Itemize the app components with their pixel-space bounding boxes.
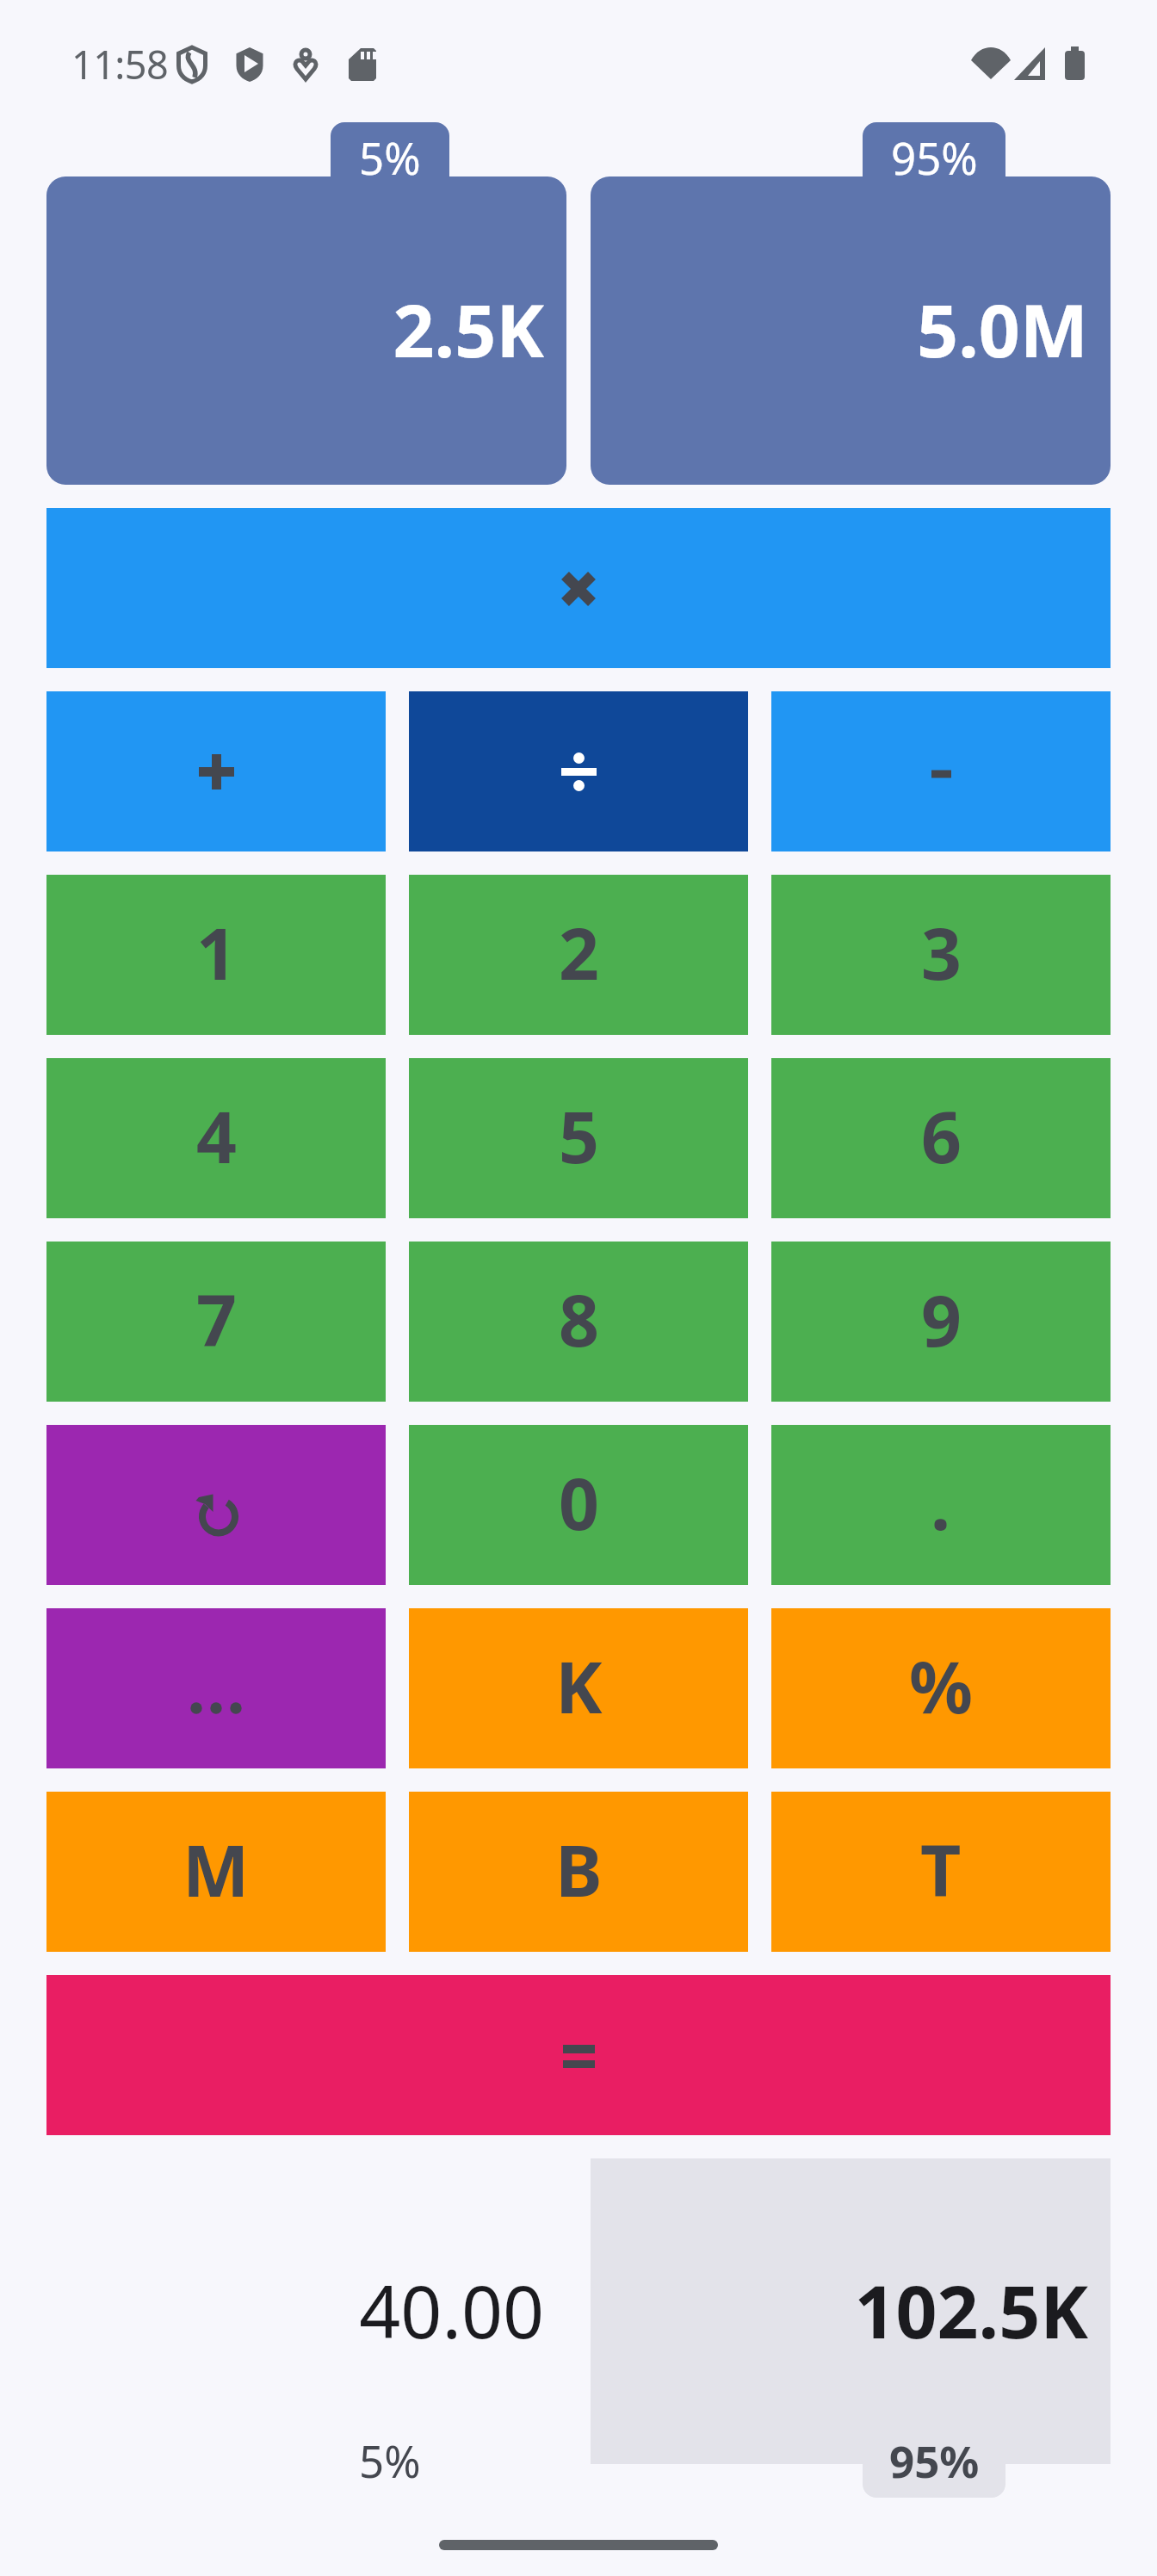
staticText: 5% bbox=[359, 127, 421, 177]
button[interactable]: 2 bbox=[409, 875, 748, 1035]
staticText: 11:58 bbox=[71, 38, 169, 90]
staticText: 2.5K bbox=[393, 280, 544, 378]
button[interactable]: 95% bbox=[863, 2428, 1005, 2498]
staticText: 4 bbox=[196, 1087, 237, 1184]
staticText: 40.00 bbox=[359, 2261, 544, 2359]
button[interactable]: 0 bbox=[409, 1425, 748, 1585]
button[interactable]: 102.5K bbox=[591, 2158, 1111, 2464]
button[interactable]: Reset bbox=[46, 1425, 386, 1585]
staticText: M bbox=[183, 1821, 250, 1917]
button[interactable]: 5% bbox=[331, 122, 449, 177]
button[interactable]: 6 bbox=[771, 1058, 1111, 1218]
staticText: 5% bbox=[359, 2430, 421, 2490]
staticText: B bbox=[555, 1821, 603, 1917]
button[interactable]: 8 bbox=[409, 1242, 748, 1402]
staticText: 5 bbox=[559, 1087, 599, 1184]
button[interactable]: 7 bbox=[46, 1242, 386, 1402]
staticText: . bbox=[931, 1454, 951, 1551]
button[interactable]: Divide bbox=[409, 691, 748, 851]
button[interactable]: 5% bbox=[331, 2428, 449, 2498]
staticText: 102.5K bbox=[854, 2261, 1088, 2359]
button[interactable]: 1 bbox=[46, 875, 386, 1035]
button[interactable]: % bbox=[771, 1608, 1111, 1768]
staticText: 1 bbox=[196, 904, 237, 1000]
button[interactable]: B bbox=[409, 1792, 748, 1952]
button[interactable]: Multiply bbox=[46, 508, 1111, 668]
button[interactable]: Add bbox=[46, 691, 386, 851]
button[interactable]: 9 bbox=[771, 1242, 1111, 1402]
staticText: 6 bbox=[921, 1087, 962, 1184]
button[interactable]: K bbox=[409, 1608, 748, 1768]
button[interactable]: More options bbox=[46, 1608, 386, 1768]
button[interactable]: Equals bbox=[46, 1975, 1111, 2135]
button[interactable]: 5.0M bbox=[591, 176, 1111, 485]
staticText: 7 bbox=[196, 1271, 237, 1367]
button[interactable]: 5 bbox=[409, 1058, 748, 1218]
staticText: % bbox=[909, 1638, 973, 1734]
staticText: T bbox=[920, 1821, 962, 1917]
button[interactable]: T bbox=[771, 1792, 1111, 1952]
staticText: 95% bbox=[889, 2430, 980, 2490]
button[interactable]: Subtract bbox=[771, 691, 1111, 851]
staticText: 0 bbox=[559, 1454, 599, 1551]
staticText: 2 bbox=[559, 904, 599, 1000]
staticText: K bbox=[555, 1638, 603, 1734]
button[interactable]: 95% bbox=[863, 122, 1005, 177]
staticText: 5.0M bbox=[917, 280, 1088, 378]
staticText: 8 bbox=[559, 1271, 599, 1367]
staticText: 3 bbox=[921, 904, 962, 1000]
button[interactable]: 4 bbox=[46, 1058, 386, 1218]
button[interactable]: . bbox=[771, 1425, 1111, 1585]
button[interactable]: 2.5K bbox=[46, 176, 566, 485]
button[interactable]: 3 bbox=[771, 875, 1111, 1035]
staticText: 9 bbox=[921, 1271, 962, 1367]
button[interactable]: M bbox=[46, 1792, 386, 1952]
staticText: 95% bbox=[891, 127, 978, 177]
button[interactable]: 40.00 bbox=[46, 2158, 566, 2464]
